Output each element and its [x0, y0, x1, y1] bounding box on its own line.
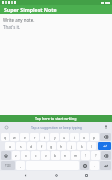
staticText: d [30, 144, 33, 149]
staticText: q [4, 135, 7, 140]
staticText: ? [95, 153, 97, 158]
staticText: i [74, 135, 75, 140]
staticText: l [91, 144, 92, 149]
staticText: Write any note. [3, 17, 35, 23]
staticText: y [54, 135, 56, 140]
staticText: b [54, 153, 57, 158]
staticText: Tap a suggestion or keep typing [31, 125, 82, 130]
button[interactable]: j [67, 142, 76, 150]
button[interactable]: o [80, 133, 89, 141]
button[interactable]: Backspace [100, 133, 111, 141]
button[interactable]: , [16, 161, 25, 170]
button[interactable]: f [37, 142, 46, 150]
staticText: , [20, 163, 21, 168]
button[interactable]: . [90, 161, 99, 170]
staticText: Tap here to start writing [35, 116, 77, 121]
button[interactable]: z [12, 151, 20, 160]
staticText: m [74, 153, 78, 158]
button[interactable]: y [50, 133, 59, 141]
staticText: That's it. [3, 24, 21, 30]
button[interactable]: Back [21, 171, 30, 180]
staticText: Super Simplest Note [4, 6, 57, 13]
staticText: ?123 [5, 164, 11, 168]
staticText: h [60, 144, 63, 149]
button[interactable]: Voice input [103, 124, 109, 130]
staticText: z [15, 153, 17, 158]
staticText: w [13, 135, 16, 140]
button[interactable]: g [47, 142, 56, 150]
staticText: e [24, 135, 26, 140]
staticText: a [9, 144, 11, 149]
button[interactable]: e [20, 133, 29, 141]
staticText: u [63, 135, 66, 140]
button[interactable]: ?123 [1, 161, 15, 170]
staticText: f [41, 144, 43, 149]
staticText: g [50, 144, 53, 149]
staticText: t [44, 135, 46, 140]
button[interactable]: p [90, 133, 99, 141]
button[interactable]: h [57, 142, 66, 150]
staticText: p [93, 135, 96, 140]
button[interactable]: ? [91, 151, 100, 160]
button[interactable]: Google Assistant [3, 124, 9, 130]
button[interactable]: d [27, 142, 36, 150]
staticText: s [20, 144, 22, 149]
button[interactable]: Enter [98, 142, 111, 150]
button[interactable]: i [70, 133, 79, 141]
button[interactable]: l [87, 142, 96, 150]
button[interactable]: s [16, 142, 26, 150]
button[interactable]: v [41, 151, 50, 160]
button[interactable]: t [40, 133, 49, 141]
button[interactable]: Shift [1, 151, 11, 160]
staticText: x [25, 153, 27, 158]
button[interactable]: Delete [101, 151, 111, 160]
button[interactable]: a [5, 142, 15, 150]
staticText: ! [85, 153, 86, 158]
staticText: n [64, 153, 67, 158]
button[interactable]: ! [81, 151, 90, 160]
button[interactable]: w [10, 133, 19, 141]
staticText: j [71, 144, 72, 149]
button[interactable]: Recent apps [82, 171, 91, 180]
button[interactable]: x [21, 151, 30, 160]
button[interactable]: r [30, 133, 39, 141]
button[interactable]: Tap here to start writing [0, 115, 112, 122]
staticText: o [83, 135, 86, 140]
button[interactable]: c [31, 151, 40, 160]
button[interactable]: u [60, 133, 69, 141]
staticText: k [81, 144, 83, 149]
staticText: r [34, 135, 36, 140]
button[interactable]: Write any note. [0, 14, 112, 115]
button[interactable]: Return [100, 161, 111, 170]
button[interactable]: b [51, 151, 60, 160]
button[interactable]: n [61, 151, 70, 160]
button[interactable]: m [71, 151, 80, 160]
staticText: . [94, 163, 95, 168]
staticText: v [45, 153, 47, 158]
button[interactable]: Home [52, 171, 61, 180]
button[interactable]: k [77, 142, 86, 150]
button[interactable]: Emoji [80, 161, 89, 170]
button[interactable]: q [1, 133, 9, 141]
staticText: c [35, 153, 37, 158]
